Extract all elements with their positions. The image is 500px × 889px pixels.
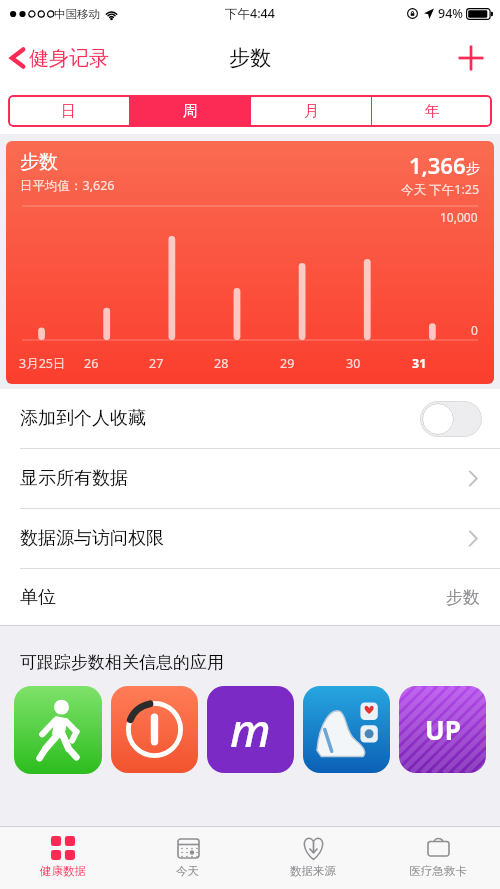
staticText: 显示所有数据 [20, 467, 128, 490]
staticText: 日 [61, 102, 76, 121]
staticText: 步数 [229, 45, 271, 71]
button[interactable]: 日 [8, 95, 129, 127]
staticText: 中国移动 [54, 7, 100, 21]
staticText: 27 [149, 355, 164, 372]
button[interactable]: Running app [303, 686, 390, 773]
button[interactable]: 今天 [125, 827, 250, 889]
staticText: 0 [471, 322, 478, 338]
staticText: 添加到个人收藏 [20, 407, 146, 430]
staticText: UP [425, 712, 461, 747]
staticText: 今天 [176, 864, 199, 878]
button[interactable]: Strava app [111, 686, 198, 773]
staticText: 数据来源 [290, 864, 336, 878]
staticText: 28 [214, 355, 229, 372]
button[interactable]: 步数 [6, 141, 494, 384]
button[interactable]: 医疗急救卡 [375, 827, 500, 889]
staticText: 今天 下午1:25 [401, 181, 480, 198]
staticText: 1,366 [409, 150, 466, 180]
staticText: m [230, 698, 271, 761]
staticText: 周 [183, 102, 198, 121]
button[interactable]: 健康数据 [0, 827, 125, 889]
button[interactable]: Add data [442, 33, 500, 83]
button[interactable]: 月 [251, 95, 371, 127]
button[interactable]: 周 [130, 95, 250, 127]
staticText: 数据源与访问权限 [20, 527, 164, 550]
staticText: 步 [466, 160, 480, 178]
staticText: 单位 [20, 586, 56, 609]
button[interactable]: 健身记录 [0, 37, 119, 79]
button[interactable]: 单位 [0, 569, 500, 625]
button[interactable]: Add to favorites [420, 401, 482, 437]
staticText: 3月25日 [19, 355, 66, 372]
button[interactable]: 显示所有数据 [0, 449, 500, 508]
button[interactable]: 数据来源 [250, 827, 375, 889]
staticText: 94% [438, 5, 463, 22]
staticText: 30 [346, 355, 361, 372]
button[interactable]: 年 [372, 95, 492, 127]
staticText: 健身记录 [29, 46, 109, 71]
button[interactable]: Moves app [207, 686, 294, 773]
staticText: 月 [304, 102, 319, 121]
staticText: 26 [84, 355, 99, 372]
staticText: 可跟踪步数相关信息的应用 [20, 652, 224, 673]
staticText: 日平均值：3,626 [20, 177, 115, 194]
staticText: 年 [425, 102, 440, 121]
staticText: 下午4:44 [225, 5, 275, 22]
button[interactable]: 添加到个人收藏 [0, 389, 500, 448]
staticText: 步数 [20, 150, 58, 174]
staticText: 10,000 [440, 209, 478, 225]
staticText: 31 [412, 355, 427, 372]
staticText: 医疗急救卡 [409, 864, 467, 878]
staticText: 步数 [446, 587, 480, 608]
button[interactable]: Pedometer app [14, 686, 102, 774]
staticText: 健康数据 [40, 864, 86, 878]
button[interactable]: 数据源与访问权限 [0, 509, 500, 568]
button[interactable]: UP app [399, 686, 486, 773]
staticText: 29 [280, 355, 295, 372]
